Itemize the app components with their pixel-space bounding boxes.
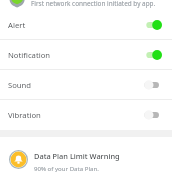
button[interactable]: Sound	[0, 70, 172, 100]
button[interactable]: Alert	[0, 10, 172, 40]
staticText: 90% of your Data Plan.	[34, 164, 99, 172]
staticText: First network connection initiated by ap…	[31, 0, 156, 8]
button[interactable]: Notification	[0, 40, 172, 70]
button[interactable]: Data Plan Limit Warning	[0, 137, 172, 172]
staticText: Sound	[8, 80, 32, 90]
staticText: Vibration	[8, 110, 41, 120]
staticText: Data Plan Limit Warning	[34, 151, 120, 161]
staticText: Notification	[8, 50, 51, 60]
button[interactable]: First network connection initiated by ap…	[0, 0, 172, 10]
button[interactable]: Vibration	[0, 100, 172, 130]
staticText: Alert	[8, 20, 26, 30]
